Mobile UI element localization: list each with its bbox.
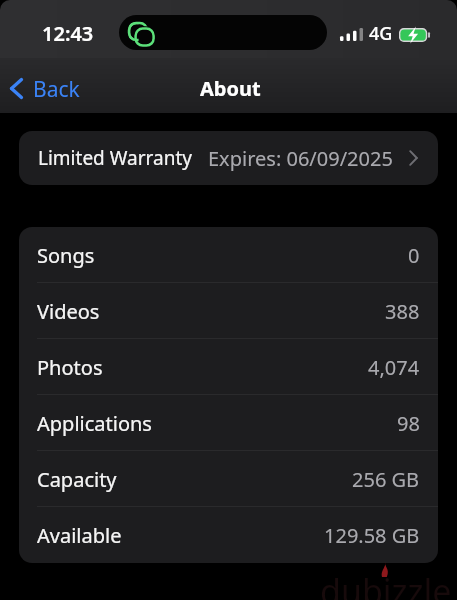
- other: Battery charging: [399, 28, 430, 42]
- staticText: About: [200, 75, 261, 102]
- button[interactable]: Applications: [19, 395, 438, 451]
- button[interactable]: Available: [19, 507, 438, 563]
- staticText: Videos: [37, 298, 100, 325]
- staticText: 388: [385, 298, 420, 325]
- staticText: Expires: 06/09/2025: [208, 145, 393, 172]
- button[interactable]: Videos: [19, 283, 438, 339]
- other: Live activity: [119, 15, 327, 50]
- button[interactable]: Limited Warranty: [19, 131, 438, 185]
- staticText: 0: [408, 242, 420, 269]
- button[interactable]: Photos: [19, 339, 438, 395]
- staticText: 129.58 GB: [324, 522, 420, 549]
- staticText: Songs: [37, 242, 95, 269]
- staticText: 256 GB: [352, 466, 420, 493]
- staticText: Photos: [37, 354, 103, 381]
- other: Cellular signal strength: [340, 28, 363, 41]
- staticText: Limited Warranty: [38, 145, 192, 171]
- staticText: 98: [397, 410, 420, 437]
- button[interactable]: Back: [0, 66, 94, 111]
- staticText: dubizzle: [320, 568, 452, 600]
- staticText: Capacity: [37, 466, 117, 493]
- button[interactable]: Songs: [19, 227, 438, 283]
- staticText: 4,074: [368, 354, 420, 381]
- other: Link activity: [129, 23, 155, 47]
- staticText: 12:43: [42, 20, 94, 47]
- button[interactable]: Capacity: [19, 451, 438, 507]
- staticText: Applications: [37, 410, 152, 437]
- staticText: 4G: [369, 21, 393, 46]
- staticText: Available: [37, 522, 122, 549]
- staticText: Back: [33, 75, 80, 104]
